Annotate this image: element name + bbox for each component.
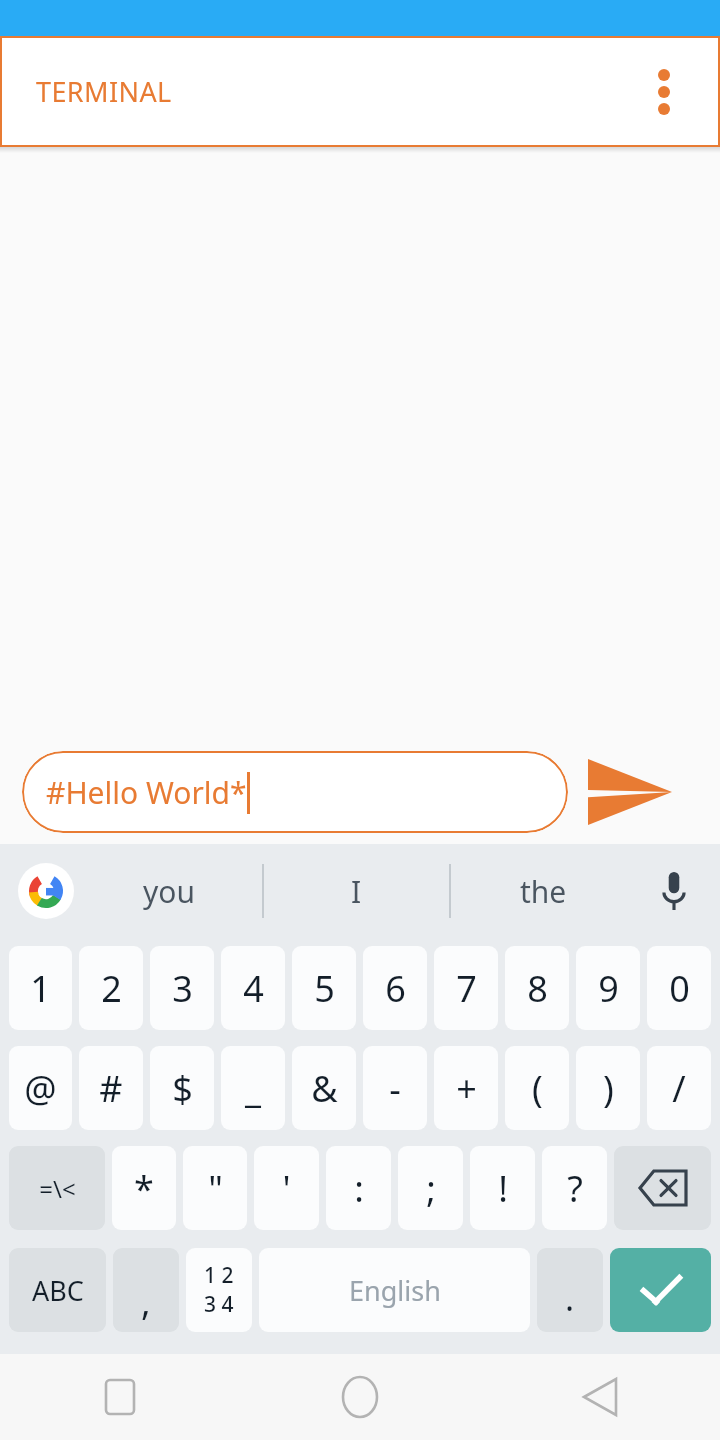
staticText: /	[672, 1064, 686, 1113]
staticText: )	[603, 1064, 614, 1113]
button[interactable]: I	[264, 844, 449, 938]
button[interactable]: Home	[240, 1354, 480, 1440]
button[interactable]: .	[537, 1248, 603, 1332]
button[interactable]: *	[112, 1146, 176, 1230]
staticText: &	[311, 1064, 338, 1113]
button[interactable]: you	[76, 844, 262, 938]
staticText: the	[520, 871, 567, 912]
button[interactable]: 9	[576, 946, 640, 1030]
button[interactable]: Voice input	[646, 863, 702, 919]
staticText: 1 2	[204, 1261, 234, 1290]
button[interactable]: Google	[18, 863, 74, 919]
staticText: 4	[243, 964, 264, 1013]
button[interactable]: #Hello World*	[22, 751, 568, 833]
staticText: 3	[172, 964, 193, 1013]
button[interactable]: @	[9, 1046, 72, 1130]
staticText: 9	[598, 964, 619, 1013]
staticText: +	[456, 1064, 477, 1113]
staticText: !	[498, 1164, 508, 1213]
staticText: 2	[101, 964, 122, 1013]
staticText: 3 4	[204, 1290, 234, 1319]
staticText: ;	[426, 1164, 436, 1213]
button[interactable]: '	[254, 1146, 319, 1230]
staticText: 1	[30, 964, 51, 1013]
staticText: $	[172, 1064, 193, 1113]
staticText: #Hello World*	[46, 772, 247, 813]
button[interactable]: ,	[113, 1248, 179, 1332]
staticText: "	[208, 1164, 223, 1213]
button[interactable]: "	[183, 1146, 247, 1230]
staticText: '	[282, 1164, 291, 1213]
button[interactable]: 6	[363, 946, 427, 1030]
staticText: #	[99, 1064, 123, 1113]
button[interactable]: Back	[480, 1354, 720, 1440]
button[interactable]: /	[647, 1046, 711, 1130]
button[interactable]: +	[434, 1046, 498, 1130]
staticText: =\<	[39, 1172, 76, 1205]
button[interactable]: #	[79, 1046, 143, 1130]
button[interactable]: 1	[9, 946, 72, 1030]
button[interactable]: &	[292, 1046, 356, 1130]
button[interactable]: !	[470, 1146, 535, 1230]
button[interactable]: 4	[221, 946, 285, 1030]
staticText: 6	[385, 964, 406, 1013]
button[interactable]: =\<	[9, 1146, 105, 1230]
staticText: 5	[314, 964, 335, 1013]
button[interactable]: (	[505, 1046, 569, 1130]
button[interactable]: Send	[582, 749, 678, 835]
button[interactable]: _	[221, 1046, 285, 1130]
staticText: *	[134, 1164, 154, 1213]
staticText: ?	[567, 1164, 583, 1213]
button[interactable]: $	[150, 1046, 214, 1130]
staticText: @	[24, 1064, 57, 1113]
staticText: you	[143, 871, 195, 912]
button[interactable]: More options	[636, 64, 692, 120]
button[interactable]: the	[451, 844, 636, 938]
button[interactable]: -	[363, 1046, 427, 1130]
button[interactable]: ?	[542, 1146, 607, 1230]
button[interactable]: English	[259, 1248, 530, 1332]
staticText: 8	[527, 964, 548, 1013]
staticText: :	[354, 1164, 364, 1213]
button[interactable]: 8	[505, 946, 569, 1030]
button[interactable]: 5	[292, 946, 356, 1030]
button[interactable]: 7	[434, 946, 498, 1030]
staticText: 7	[456, 964, 477, 1013]
button[interactable]: 0	[647, 946, 711, 1030]
button[interactable]: Recents	[0, 1354, 240, 1440]
staticText: TERMINAL	[36, 73, 172, 110]
staticText: I	[351, 871, 362, 912]
staticText: _	[245, 1064, 261, 1113]
button[interactable]: Enter	[610, 1248, 711, 1332]
button[interactable]: :	[326, 1146, 391, 1230]
staticText: -	[389, 1064, 401, 1113]
button[interactable]: ABC	[9, 1248, 106, 1332]
staticText: English	[349, 1272, 441, 1309]
staticText: (	[532, 1064, 543, 1113]
button[interactable]: 2	[79, 946, 143, 1030]
staticText: ABC	[32, 1272, 84, 1309]
button[interactable]: Backspace	[614, 1146, 711, 1230]
staticText: 0	[669, 964, 690, 1013]
button[interactable]: )	[576, 1046, 640, 1130]
staticText: ,	[141, 1277, 151, 1326]
button[interactable]: ;	[398, 1146, 463, 1230]
staticText: .	[565, 1275, 575, 1321]
button[interactable]: 3	[150, 946, 214, 1030]
button[interactable]: Numbers	[186, 1248, 252, 1332]
